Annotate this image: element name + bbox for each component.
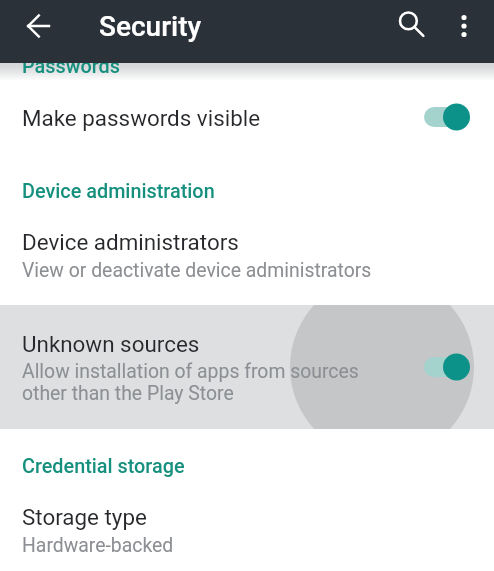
button[interactable]: Device administrators bbox=[0, 214, 494, 292]
staticText: Passwords bbox=[22, 55, 120, 78]
button[interactable]: Navigate up bbox=[16, 3, 61, 48]
button[interactable]: Make passwords visible bbox=[0, 89, 494, 149]
staticText: Allow installation of apps from sources bbox=[22, 360, 359, 383]
staticText: Make passwords visible bbox=[22, 105, 261, 131]
staticText: Storage type bbox=[22, 504, 147, 530]
staticText: Credential storage bbox=[22, 455, 185, 478]
staticText: other than the Play Store bbox=[22, 382, 234, 405]
staticText: Device administrators bbox=[22, 229, 239, 255]
staticText: Security bbox=[99, 10, 202, 43]
staticText: Unknown sources bbox=[22, 331, 200, 357]
button[interactable]: Unknown sources bbox=[0, 305, 494, 429]
button[interactable]: Search bbox=[388, 1, 433, 46]
button[interactable]: Storage type bbox=[0, 489, 494, 567]
staticText: View or deactivate device administrators bbox=[22, 259, 372, 282]
button[interactable]: More options bbox=[441, 3, 486, 48]
staticText: Device administration bbox=[22, 180, 215, 203]
staticText: Hardware-backed bbox=[22, 534, 174, 557]
